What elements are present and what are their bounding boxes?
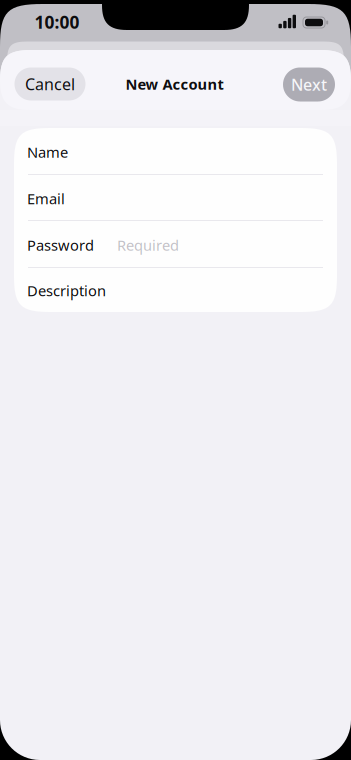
button[interactable]: Next xyxy=(283,67,335,101)
button[interactable]: Name xyxy=(14,129,337,175)
staticText: 10:00 xyxy=(34,10,79,33)
staticText: Next xyxy=(291,74,327,95)
staticText: New Account xyxy=(125,74,223,94)
staticText: Description xyxy=(27,281,106,300)
staticText: Required xyxy=(117,235,179,255)
staticText: Email xyxy=(27,189,65,208)
button[interactable]: Password xyxy=(14,222,337,268)
button[interactable]: Description xyxy=(14,267,337,313)
staticText: Password xyxy=(27,235,94,255)
button[interactable]: Email xyxy=(14,175,337,221)
staticText: Cancel xyxy=(25,73,75,95)
button[interactable]: Cancel xyxy=(14,67,85,100)
staticText: Name xyxy=(27,142,68,162)
